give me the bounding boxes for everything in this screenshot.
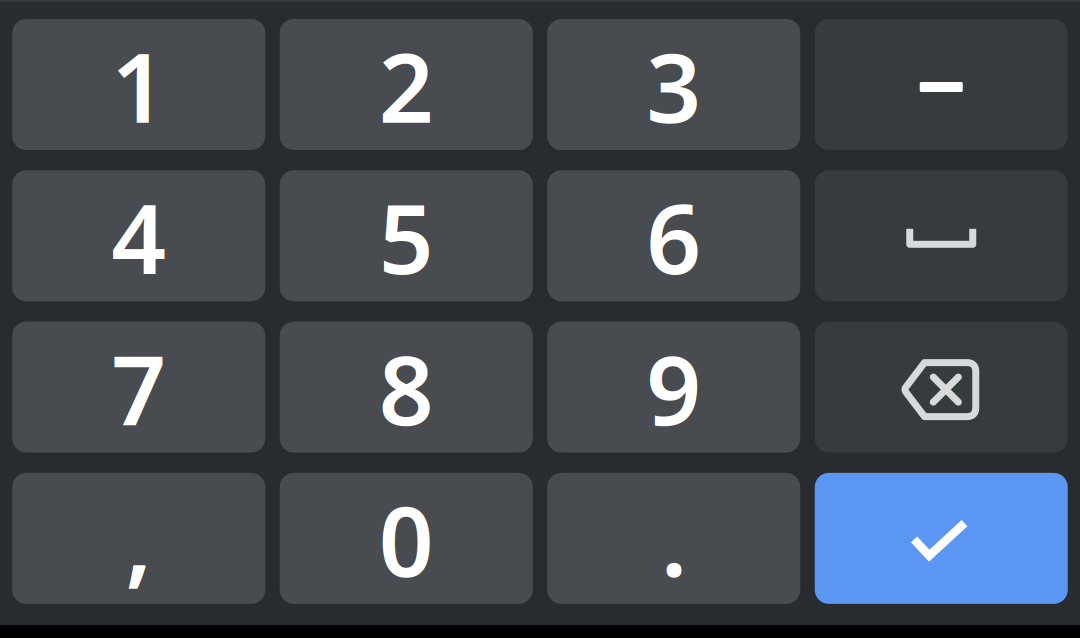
staticText: ,	[125, 476, 152, 603]
button[interactable]: 0	[280, 473, 533, 604]
staticText: .	[661, 476, 687, 603]
staticText: 9	[646, 324, 701, 452]
button[interactable]: Delete	[815, 322, 1068, 453]
staticText: 5	[379, 173, 434, 301]
button[interactable]: 8	[280, 322, 533, 453]
button[interactable]: 1	[12, 19, 265, 150]
button[interactable]: .	[547, 473, 800, 604]
staticText: 0	[379, 476, 434, 603]
button[interactable]: 4	[12, 170, 265, 301]
button[interactable]: 7	[12, 322, 265, 453]
staticText: 7	[111, 324, 166, 452]
button[interactable]: Space	[815, 170, 1068, 301]
staticText: 4	[111, 173, 166, 301]
button[interactable]: 2	[280, 19, 533, 150]
button[interactable]: 5	[280, 170, 533, 301]
button[interactable]: Done	[815, 473, 1068, 604]
button[interactable]: 6	[547, 170, 800, 301]
button[interactable]: Minus	[815, 19, 1068, 150]
staticText: 6	[646, 173, 701, 301]
button[interactable]: ,	[12, 473, 265, 604]
button[interactable]: 3	[547, 19, 800, 150]
staticText: 8	[379, 324, 434, 452]
staticText: 3	[646, 22, 701, 149]
staticText: 1	[111, 22, 166, 149]
staticText: 2	[379, 22, 434, 149]
button[interactable]: 9	[547, 322, 800, 453]
